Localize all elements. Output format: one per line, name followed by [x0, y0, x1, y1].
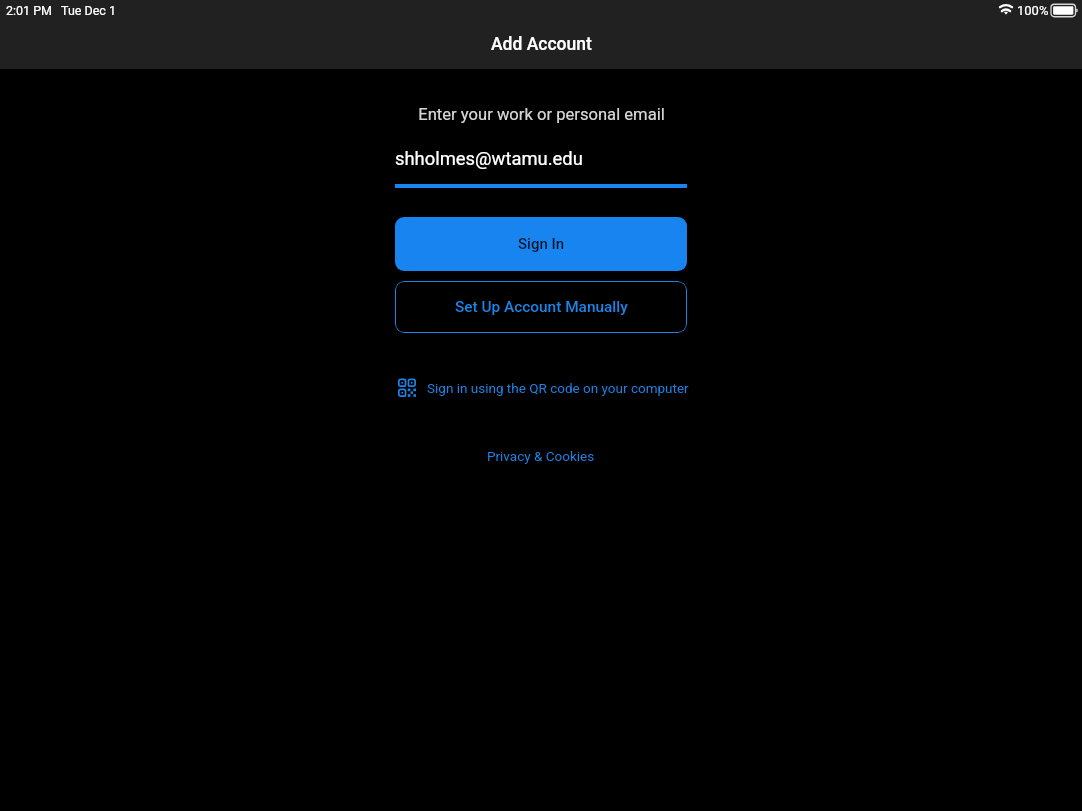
staticText: Enter your work or personal email	[418, 105, 665, 124]
staticText: 100%	[1017, 3, 1049, 18]
staticText: Set Up Account Manually	[455, 298, 628, 316]
button[interactable]: Privacy & Cookies	[487, 448, 595, 464]
staticText: 2:01 PM	[6, 3, 53, 18]
staticText: Add Account	[491, 34, 592, 55]
staticText: Sign In	[518, 235, 565, 253]
button[interactable]: Sign in with QR code	[398, 378, 689, 397]
staticText: Tue Dec 1	[61, 3, 116, 18]
other: Battery full	[1051, 4, 1078, 17]
other: Wi-Fi connected	[999, 4, 1013, 16]
staticText: Sign in using the QR code on your comput…	[427, 380, 689, 396]
button[interactable]: Set Up Account Manually	[395, 281, 687, 333]
staticText: shholmes@wtamu.edu	[395, 148, 583, 170]
staticText: Privacy & Cookies	[487, 448, 595, 464]
button[interactable]: Sign In	[395, 217, 687, 271]
other: Sign in with QR code	[398, 378, 416, 397]
